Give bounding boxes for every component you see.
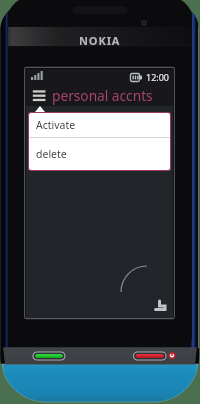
button[interactable]: Activate [29, 113, 170, 137]
staticText: NOKIA [79, 33, 121, 48]
staticText: delete [36, 147, 67, 161]
button[interactable]: Back [147, 292, 173, 318]
staticText: personal accnts [52, 86, 153, 105]
button[interactable]: delete [29, 138, 170, 170]
staticText: 12:00 [146, 71, 170, 83]
button[interactable]: Open navigation menu [31, 84, 47, 106]
staticText: Activate [36, 118, 76, 132]
